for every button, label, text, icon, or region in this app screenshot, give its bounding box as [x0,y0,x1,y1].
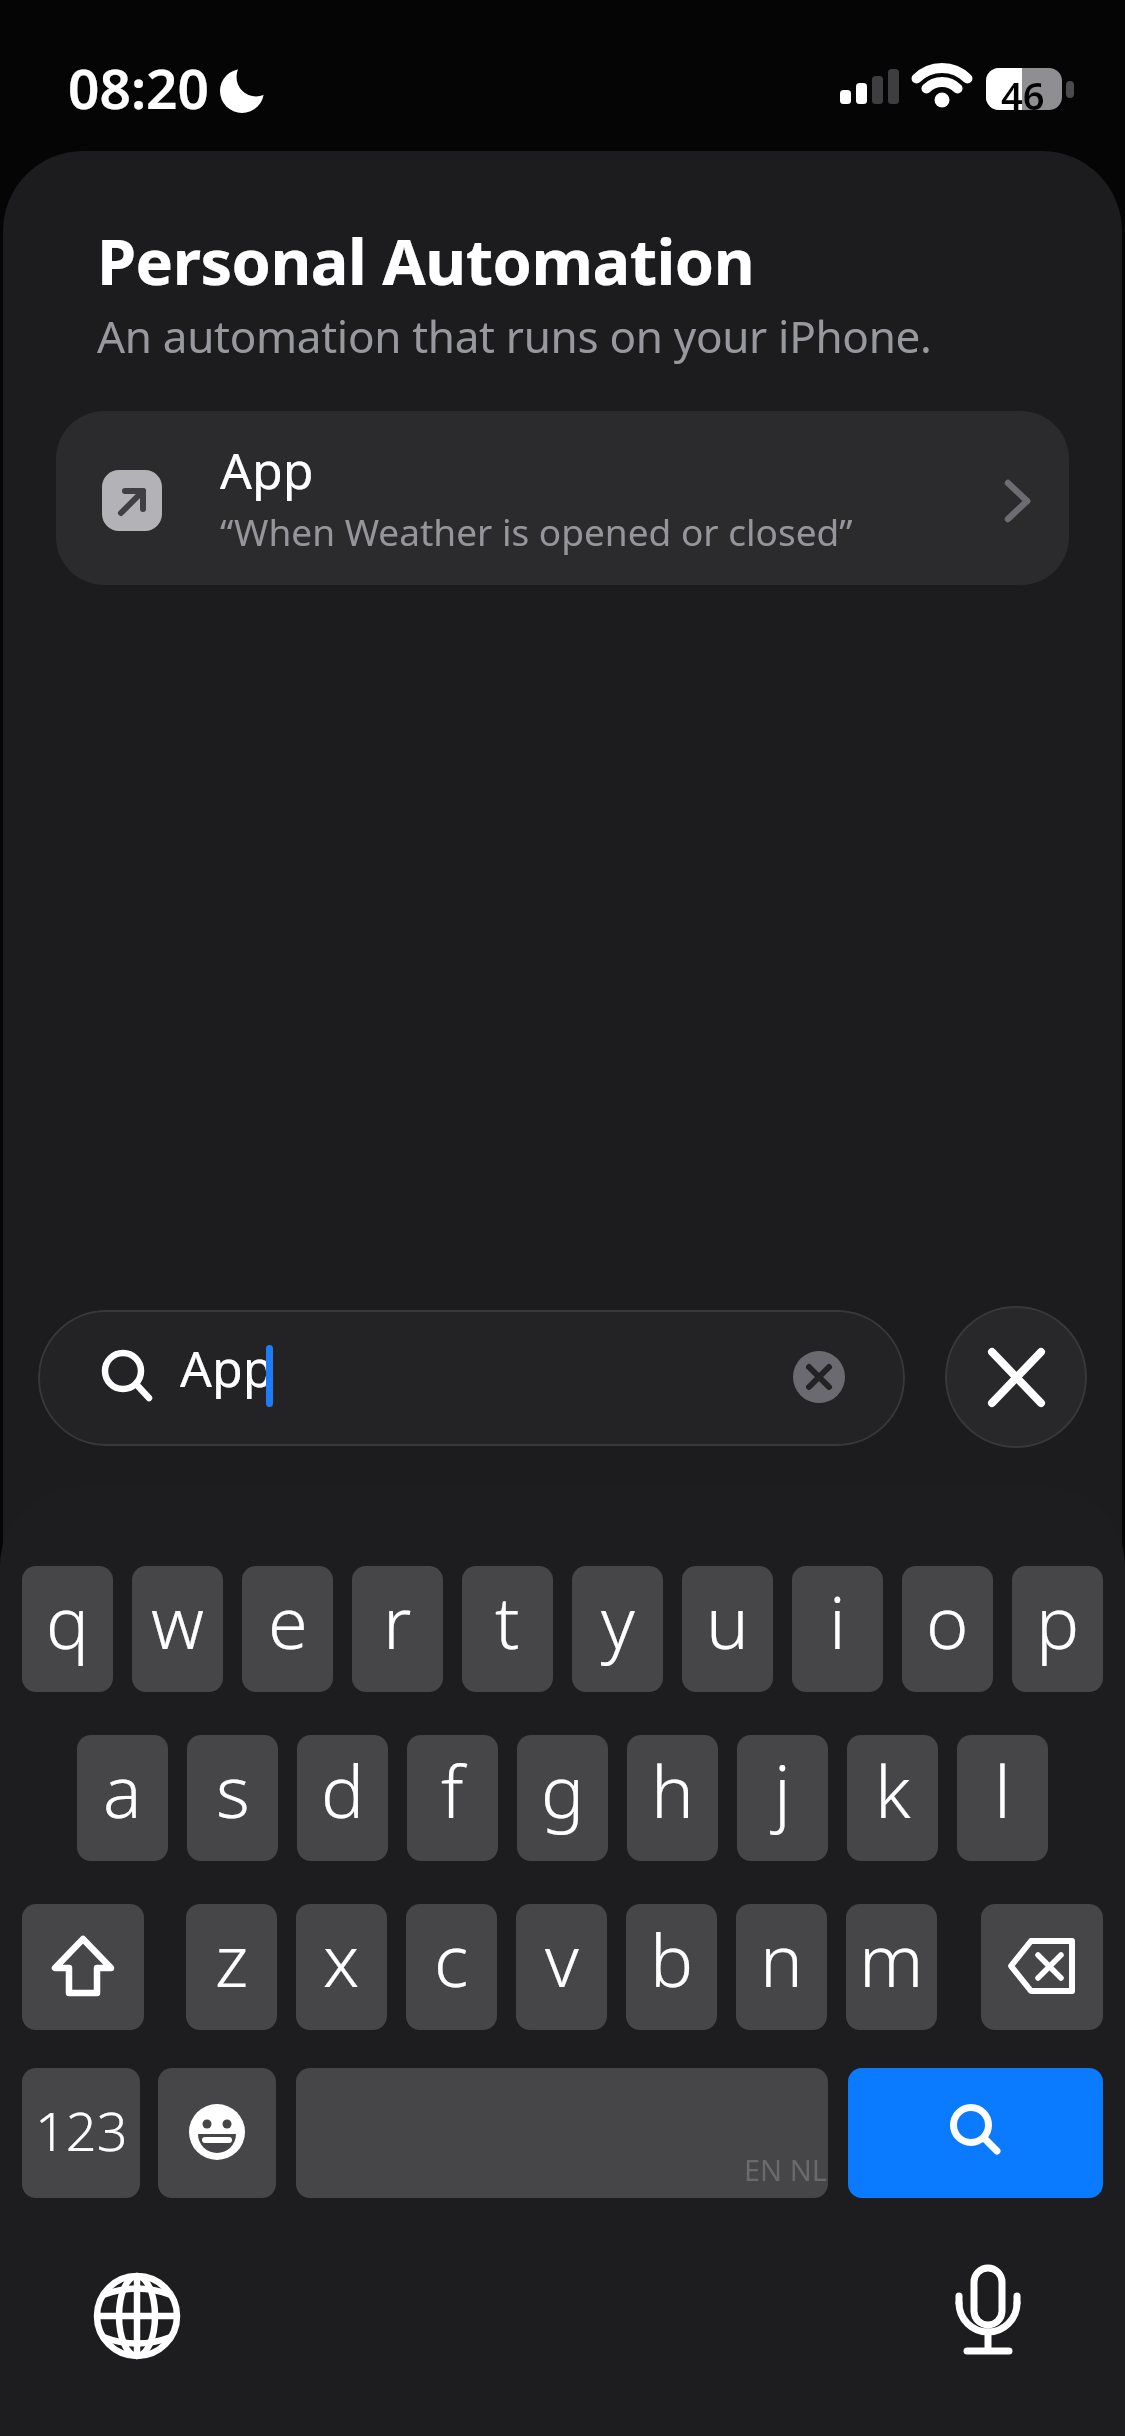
staticText: j [774,1741,791,1839]
button[interactable] [938,2266,1038,2366]
button[interactable]: 123 [22,2068,140,2198]
staticText: n [760,1910,803,2008]
button[interactable] [296,2068,828,2198]
staticText: l [994,1741,1011,1839]
button[interactable]: u [682,1566,773,1692]
staticText: 46 [1001,69,1045,121]
staticText: m [859,1910,924,2008]
button[interactable]: a [77,1735,168,1861]
button[interactable]: m [846,1904,937,2030]
staticText: f [441,1741,464,1839]
button[interactable] [56,411,1069,585]
staticText: e [268,1572,308,1670]
button[interactable] [945,1306,1087,1448]
button[interactable]: z [186,1904,277,2030]
button[interactable]: g [517,1735,608,1861]
staticText: Personal Automation [97,218,755,304]
staticText: q [46,1572,90,1670]
button[interactable] [38,1310,905,1446]
staticText: EN NL [744,2150,827,2189]
button[interactable]: f [407,1735,498,1861]
button[interactable] [158,2068,276,2198]
staticText: k [875,1741,911,1839]
staticText: i [829,1572,846,1670]
staticText: t [495,1572,520,1670]
staticText: p [1036,1572,1080,1670]
staticText: a [103,1741,142,1839]
button[interactable]: v [516,1904,607,2030]
button[interactable]: r [352,1566,443,1692]
staticText: 08:20 [68,50,210,125]
staticText: s [216,1741,250,1839]
button[interactable]: w [132,1566,223,1692]
staticText: v [545,1910,579,2008]
staticText: r [383,1572,412,1670]
button[interactable]: y [572,1566,663,1692]
staticText: z [215,1910,249,2008]
button[interactable]: l [957,1735,1048,1861]
staticText: 123 [35,2093,128,2167]
button[interactable] [22,1904,144,2030]
button[interactable]: e [242,1566,333,1692]
staticText: “When Weather is opened or closed” [220,506,853,556]
staticText: An automation that runs on your iPhone. [97,306,932,366]
staticText: d [321,1741,365,1839]
button[interactable]: n [736,1904,827,2030]
button[interactable]: x [296,1904,387,2030]
button[interactable]: q [22,1566,113,1692]
button[interactable]: o [902,1566,993,1692]
button[interactable] [87,2266,187,2366]
staticText: h [651,1741,694,1839]
button[interactable]: t [462,1566,553,1692]
staticText: App [220,436,314,504]
button[interactable]: j [737,1735,828,1861]
button[interactable] [981,1904,1103,2030]
button[interactable] [848,2068,1103,2198]
button[interactable]: i [792,1566,883,1692]
staticText: x [323,1910,360,2008]
button[interactable]: h [627,1735,718,1861]
button[interactable]: s [187,1735,278,1861]
button[interactable]: p [1012,1566,1103,1692]
staticText: g [541,1741,585,1839]
staticText: c [434,1910,469,2008]
button[interactable]: k [847,1735,938,1861]
staticText: b [650,1910,694,2008]
staticText: y [601,1572,635,1670]
button[interactable]: b [626,1904,717,2030]
button[interactable]: d [297,1735,388,1861]
staticText: App [180,1334,274,1402]
staticText: w [151,1572,204,1670]
button[interactable]: c [406,1904,497,2030]
staticText: u [706,1572,749,1670]
staticText: o [926,1572,969,1670]
